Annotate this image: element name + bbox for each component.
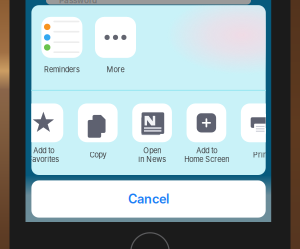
staticText: Reminders — [44, 65, 80, 74]
staticText: More — [106, 65, 124, 74]
staticText: Open in News — [138, 146, 166, 164]
staticText: Add to Favorites — [28, 146, 59, 164]
staticText: Print — [253, 150, 269, 159]
button[interactable]: Cancel — [31, 180, 266, 218]
staticText: Cancel — [128, 191, 169, 207]
staticText: Add to Home Screen — [184, 146, 229, 164]
staticText: Copy — [89, 150, 106, 159]
staticText: Password — [59, 0, 97, 5]
